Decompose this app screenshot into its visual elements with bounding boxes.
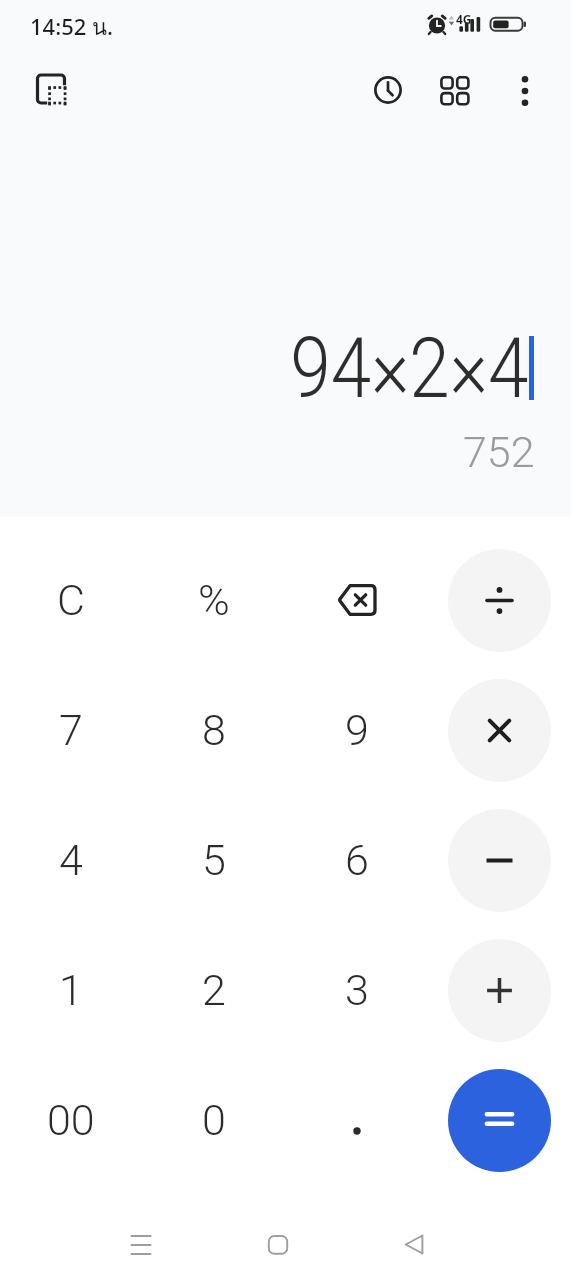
button[interactable] [254,1221,302,1269]
staticText: 9 [345,705,369,755]
button[interactable]: 1 [0,925,142,1055]
staticText: 1 [59,965,83,1015]
staticText: 4G [456,11,472,27]
button[interactable] [448,1069,551,1172]
staticText: 752 [463,427,535,477]
staticText: 8 [202,705,226,755]
button[interactable] [367,69,409,111]
button[interactable]: 9 [285,665,428,795]
button[interactable]: 3 [285,925,428,1055]
staticText: 00 [47,1095,95,1145]
button[interactable]: % [142,535,285,665]
button[interactable] [448,939,551,1042]
button[interactable] [448,549,551,652]
staticText: 3 [345,965,369,1015]
staticText: 7 [59,705,83,755]
button[interactable] [285,535,428,665]
staticText: 94×2×4 [290,319,529,417]
button[interactable] [390,1221,438,1269]
button[interactable] [448,679,551,782]
button[interactable] [504,70,546,112]
button[interactable] [434,70,476,112]
button[interactable]: 2 [142,925,285,1055]
button[interactable] [285,1055,428,1185]
staticText: 4 [59,835,83,885]
staticText: C [57,575,85,625]
button[interactable] [30,69,72,111]
staticText: 5 [202,835,226,885]
button[interactable] [117,1221,165,1269]
staticText: % [198,575,230,625]
button[interactable]: C [0,535,142,665]
staticText: 2 [202,965,226,1015]
button[interactable]: 0 [142,1055,285,1185]
button[interactable] [448,809,551,912]
staticText: 14:52 น. [30,10,114,45]
button[interactable]: 4 [0,795,142,925]
button[interactable]: 5 [142,795,285,925]
button[interactable]: 8 [142,665,285,795]
staticText: 0 [202,1095,226,1145]
button[interactable]: 7 [0,665,142,795]
staticText: 6 [345,835,369,885]
button[interactable]: 6 [285,795,428,925]
button[interactable]: 00 [0,1055,142,1185]
